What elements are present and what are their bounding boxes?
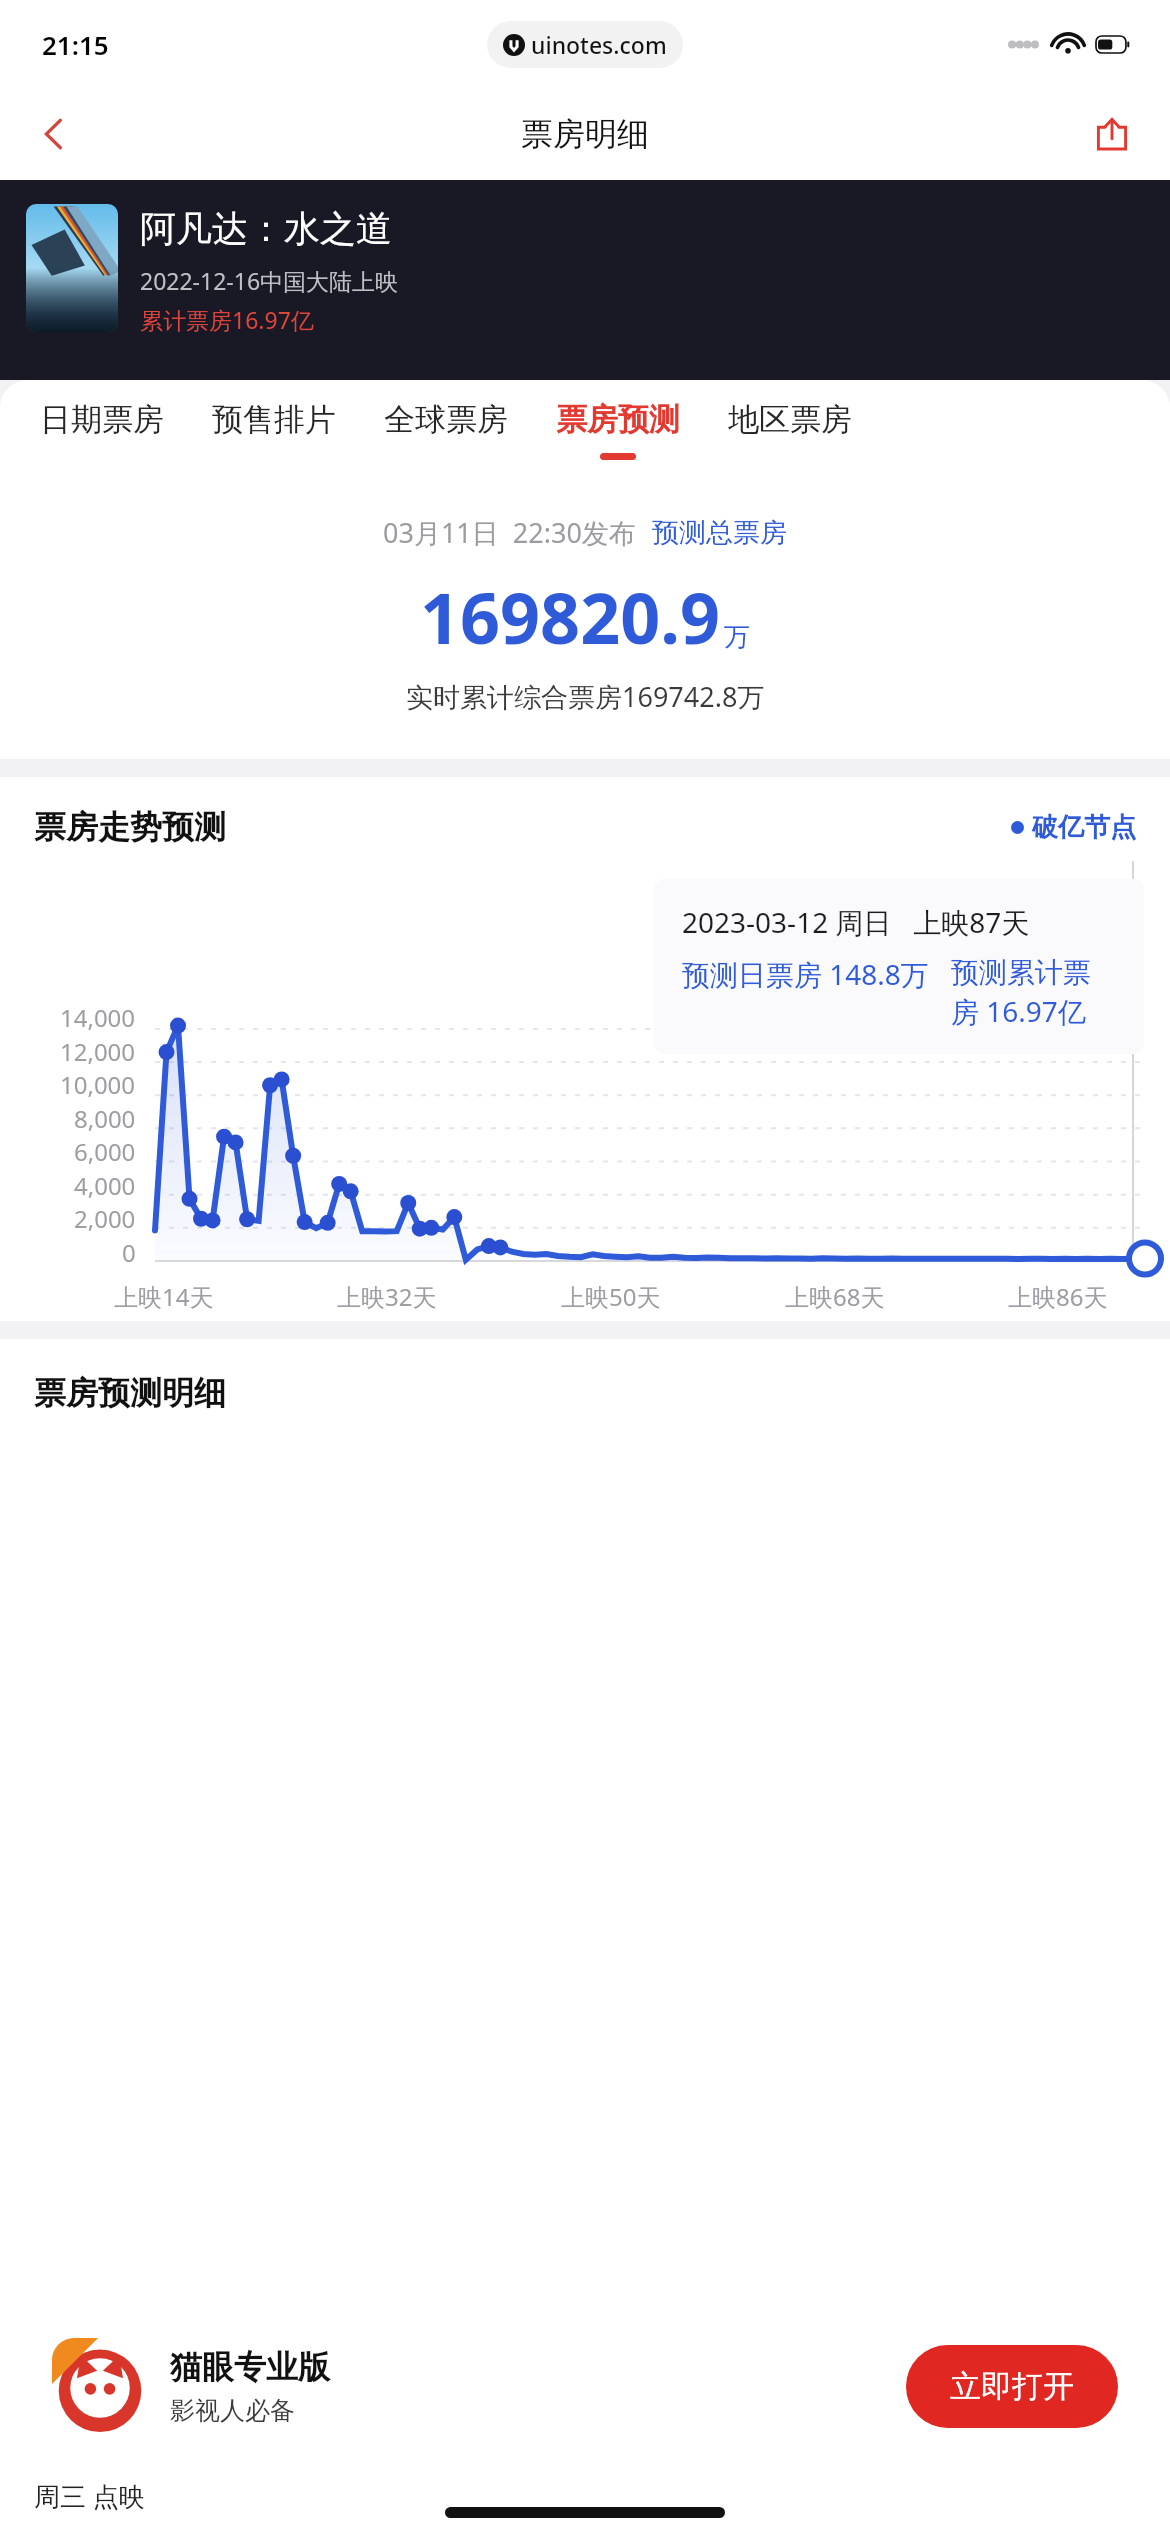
button[interactable]: 破亿节点: [1011, 811, 1136, 844]
staticText: 票房预测明细: [34, 1373, 226, 1413]
staticText: 169820.9: [420, 569, 720, 664]
staticText: 猫眼专业版: [170, 2347, 330, 2387]
staticText: 2023-03-12 周日 上映87天: [682, 903, 1030, 941]
staticText: 万: [724, 621, 750, 654]
button[interactable]: 预售排片: [188, 380, 360, 480]
staticText: 8,000: [74, 1102, 136, 1135]
staticText: 03月11日 22:30发布: [383, 514, 636, 551]
staticText: 周三 点映: [34, 2478, 145, 2514]
button[interactable]: 地区票房: [704, 380, 876, 480]
staticText: 预测累计票房 16.97亿: [951, 955, 1116, 1030]
staticText: 21:15: [42, 27, 109, 62]
staticText: 14,000: [60, 1001, 136, 1034]
button[interactable]: 日期票房: [16, 380, 188, 480]
staticText: 上映50天: [561, 1280, 661, 1313]
button[interactable]: Back: [20, 100, 88, 168]
staticText: 2,000: [74, 1202, 136, 1235]
staticText: 上映68天: [785, 1280, 885, 1313]
staticText: 地区票房: [728, 400, 852, 439]
staticText: 影视人必备: [170, 2395, 295, 2426]
staticText: 4,000: [74, 1169, 136, 1202]
staticText: 0: [122, 1236, 136, 1269]
button[interactable]: 立即打开: [906, 2345, 1118, 2428]
staticText: 票房明细: [521, 114, 649, 154]
staticText: 预测日票房 148.8万: [682, 955, 929, 993]
staticText: 上映14天: [114, 1280, 214, 1313]
staticText: 上映32天: [337, 1280, 437, 1313]
staticText: 全球票房: [384, 400, 508, 439]
staticText: 阿凡达：水之道: [140, 206, 392, 251]
staticText: 日期票房: [40, 400, 164, 439]
staticText: 预测总票房: [652, 516, 787, 550]
staticText: 2022-12-16中国大陆上映: [140, 265, 399, 296]
staticText: 实时累计综合票房169742.8万: [406, 678, 765, 715]
staticText: 6,000: [74, 1135, 136, 1168]
button[interactable]: 票房预测: [532, 380, 704, 480]
button[interactable]: 预测总票房: [652, 516, 787, 550]
staticText: 上映86天: [1008, 1280, 1108, 1313]
staticText: 12,000: [60, 1035, 136, 1068]
staticText: 累计票房16.97亿: [140, 304, 314, 335]
staticText: 立即打开: [950, 2367, 1074, 2406]
staticText: 10,000: [60, 1068, 136, 1101]
staticText: 预售排片: [212, 400, 336, 439]
staticText: 票房走势预测: [34, 807, 226, 847]
button[interactable]: 全球票房: [360, 380, 532, 480]
staticText: 破亿节点: [1032, 811, 1136, 844]
staticText: uinotes.com: [531, 29, 667, 60]
button[interactable]: 猫眼专业版: [32, 2320, 1138, 2452]
button[interactable]: Share: [1078, 100, 1146, 168]
staticText: 票房预测: [556, 400, 680, 439]
